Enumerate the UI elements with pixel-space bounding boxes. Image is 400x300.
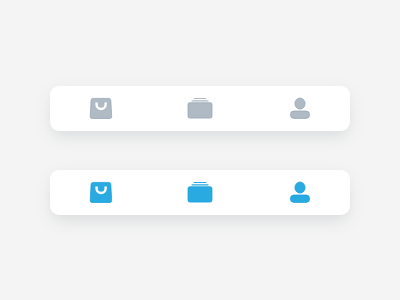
button[interactable]: Orders bbox=[150, 170, 250, 215]
button[interactable]: Shop bbox=[50, 170, 150, 215]
button[interactable]: Orders bbox=[150, 86, 250, 131]
button[interactable]: Profile bbox=[250, 170, 350, 215]
button[interactable]: Shop bbox=[50, 86, 150, 131]
button[interactable]: Profile bbox=[250, 86, 350, 131]
